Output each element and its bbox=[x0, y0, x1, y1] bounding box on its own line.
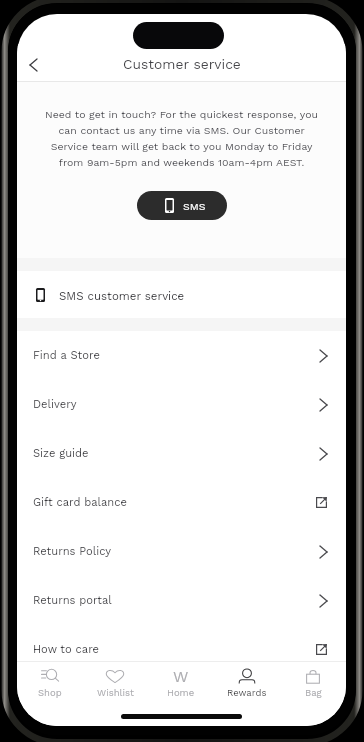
button[interactable]: SMS customer service bbox=[17, 271, 346, 318]
staticText: Shop bbox=[38, 687, 62, 698]
button[interactable]: SMS bbox=[137, 191, 227, 220]
button[interactable]: Delivery bbox=[17, 380, 346, 429]
staticText: Wishlist bbox=[97, 687, 134, 698]
button[interactable]: Shop bbox=[17, 662, 82, 704]
staticText: SMS customer service bbox=[59, 289, 185, 302]
button[interactable]: Back bbox=[17, 46, 53, 84]
staticText: Returns portal bbox=[33, 594, 112, 607]
button[interactable]: Wishlist bbox=[82, 662, 148, 704]
button[interactable]: Rewards bbox=[214, 662, 280, 704]
button[interactable]: Size guide bbox=[17, 429, 346, 478]
staticText: Rewards bbox=[227, 687, 267, 698]
staticText: W bbox=[173, 667, 189, 685]
button[interactable]: Find a Store bbox=[17, 331, 346, 380]
staticText: Bag bbox=[305, 687, 322, 698]
button[interactable]: Returns portal bbox=[17, 576, 346, 625]
staticText: Gift card balance bbox=[33, 496, 127, 509]
staticText: Home bbox=[167, 687, 195, 698]
staticText: Size guide bbox=[33, 447, 89, 460]
button[interactable]: Gift card balance bbox=[17, 478, 346, 527]
button[interactable]: Bag bbox=[280, 662, 346, 704]
staticText: How to care bbox=[33, 643, 100, 656]
staticText: Returns Policy bbox=[33, 545, 111, 558]
staticText: Need to get in touch? For the quickest r… bbox=[41, 108, 322, 168]
staticText: Delivery bbox=[33, 398, 77, 411]
staticText: Find a Store bbox=[33, 349, 100, 362]
staticText: SMS bbox=[183, 200, 206, 212]
button[interactable]: Returns Policy bbox=[17, 527, 346, 576]
button[interactable]: W bbox=[148, 662, 214, 704]
staticText: Customer service bbox=[123, 56, 241, 72]
button[interactable]: How to care bbox=[17, 625, 346, 674]
